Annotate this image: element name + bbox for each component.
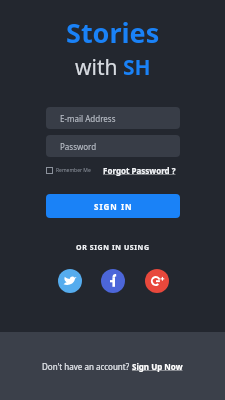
staticText: Sign Up Now bbox=[132, 361, 183, 372]
staticText: SH bbox=[123, 53, 151, 82]
button[interactable]: Forgot Password ? bbox=[103, 165, 176, 176]
staticText: with bbox=[75, 53, 123, 82]
staticText: Password bbox=[60, 141, 97, 152]
staticText: Forgot Password ? bbox=[103, 165, 176, 176]
staticText: OR SIGN IN USING bbox=[76, 243, 150, 253]
button[interactable]: Don't have an account? bbox=[42, 361, 183, 372]
staticText: SIGN IN bbox=[94, 201, 133, 212]
button[interactable]: Sign in with Google Plus bbox=[145, 269, 169, 293]
staticText: Stories bbox=[66, 14, 160, 51]
button[interactable]: E-mail Address bbox=[46, 107, 180, 129]
button[interactable]: Sign in with Twitter bbox=[58, 269, 82, 293]
button[interactable]: SIGN IN bbox=[46, 194, 180, 218]
staticText: E-mail Address bbox=[60, 113, 116, 124]
staticText: Remember Me bbox=[56, 167, 91, 174]
button[interactable]: Password bbox=[46, 135, 180, 157]
button[interactable]: Sign in with Facebook bbox=[101, 269, 125, 293]
button[interactable]: Remember Me bbox=[46, 167, 93, 174]
staticText: Don't have an account? bbox=[42, 361, 132, 372]
